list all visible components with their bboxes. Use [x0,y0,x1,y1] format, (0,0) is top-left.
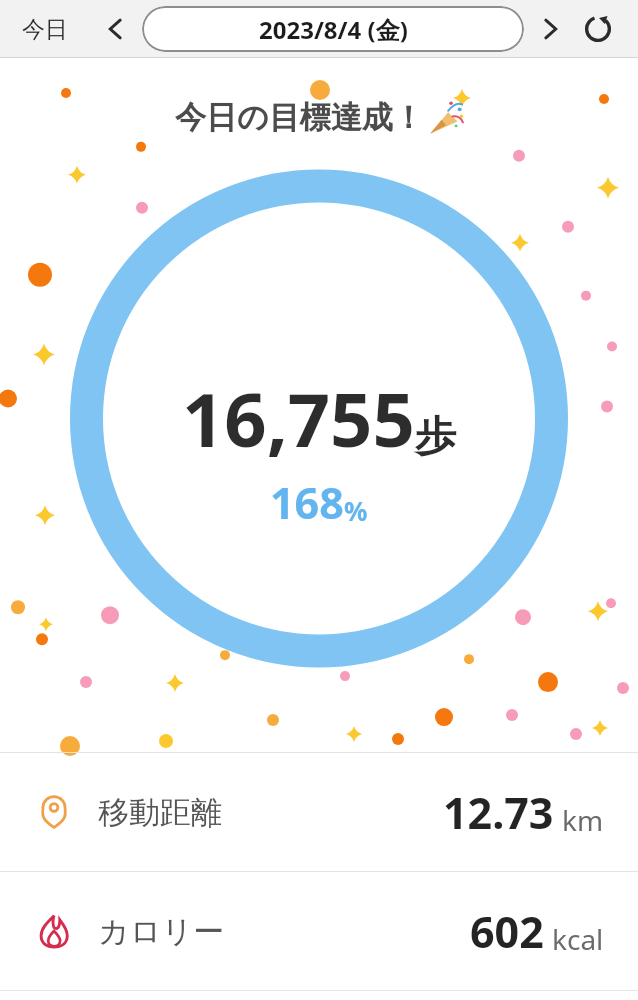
button[interactable]: 更新 [572,3,624,55]
staticText: 602 [470,902,544,961]
staticText: 16,755 [182,368,415,469]
staticText: 2023/8/4 (金) [259,13,408,46]
button[interactable]: 2023/8/4 (金) [142,6,524,52]
staticText: 168 [270,473,344,532]
button[interactable]: カロリー [0,872,638,990]
staticText: 歩 [415,411,456,463]
staticText: 12.73 [443,783,554,842]
staticText: 移動距離 [98,793,222,832]
other: 移動距離 [36,794,72,830]
other: カロリー [36,913,72,949]
button[interactable]: 移動距離 [0,753,638,871]
staticText: 今日の目標達成！ [175,98,424,137]
staticText: カロリー [98,912,225,951]
button[interactable]: 今日 [14,9,76,50]
staticText: 今日 [22,15,68,44]
staticText: kcal [552,920,604,958]
staticText: km [562,801,604,839]
button[interactable]: 前の日 [94,7,138,51]
staticText: % [344,493,368,528]
button[interactable]: 次の日 [528,7,572,51]
